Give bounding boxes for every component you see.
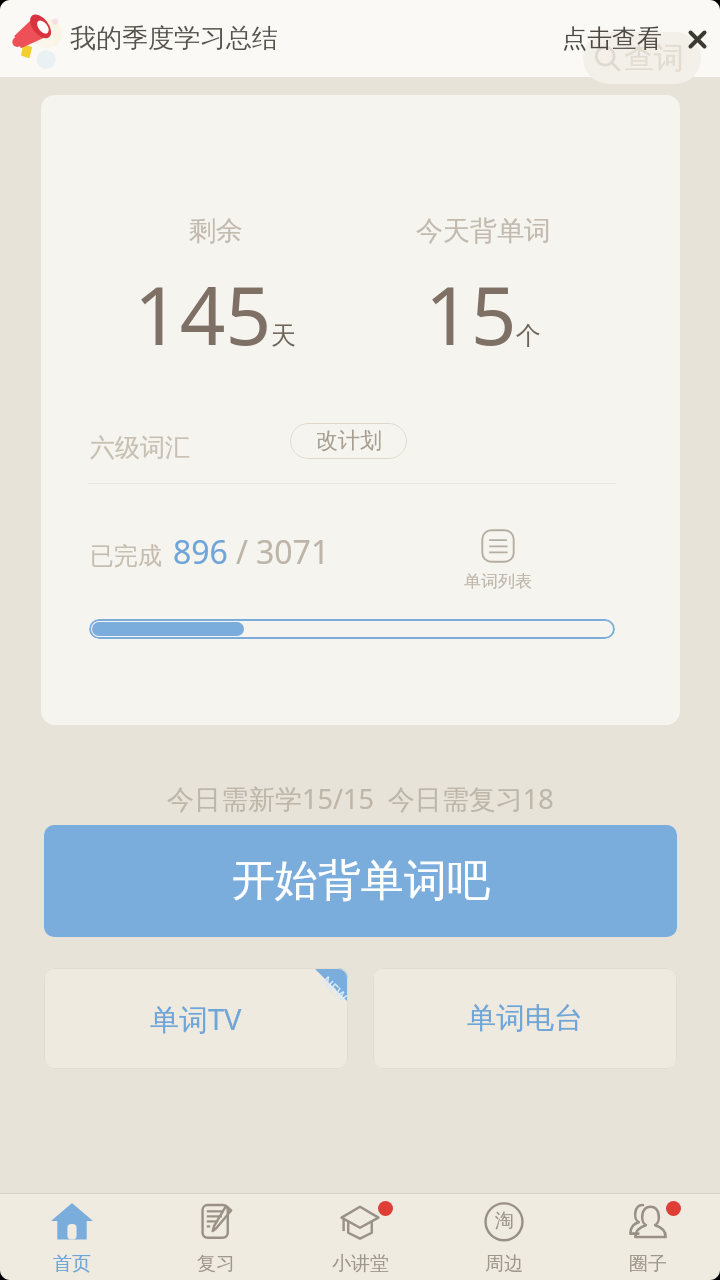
staticText: 3071 [256, 530, 330, 574]
staticText: 896 [173, 530, 228, 574]
button[interactable]: 开始背单词吧 [44, 825, 677, 937]
staticText: 六级词汇 [90, 432, 190, 463]
button[interactable]: 改计划 [290, 423, 407, 459]
staticText: 周边 [485, 1252, 523, 1276]
button[interactable]: 单词电台 [373, 968, 677, 1069]
staticText: 改计划 [316, 427, 382, 455]
staticText: 查词 [624, 39, 684, 77]
staticText: / [236, 530, 248, 574]
button[interactable]: 单词列表 [463, 529, 533, 592]
staticText: 已完成 [90, 541, 162, 571]
staticText: 小讲堂 [332, 1252, 389, 1276]
staticText: 首页 [53, 1252, 91, 1276]
button[interactable]: 复习 [144, 1194, 288, 1280]
staticText: 单词电台 [467, 1000, 583, 1037]
button[interactable]: Search word [0, 0, 720, 77]
staticText: 单词列表 [464, 571, 532, 592]
button[interactable]: 点击查看 [558, 19, 666, 58]
staticText: 天 [271, 320, 296, 351]
staticText: 今天背单词 [416, 214, 551, 248]
button[interactable]: Close [682, 24, 712, 54]
staticText: 145 [134, 259, 272, 368]
button[interactable]: 圈子 [576, 1194, 720, 1280]
button[interactable]: 单词TV [44, 968, 348, 1069]
staticText: 复习 [197, 1252, 235, 1276]
button[interactable]: Search word [583, 32, 701, 84]
button[interactable]: 淘 [432, 1194, 576, 1280]
staticText: 圈子 [629, 1252, 667, 1276]
staticText: NEW [318, 972, 348, 1006]
button[interactable]: 首页 [0, 1194, 144, 1280]
staticText: 今日需新学15/15 今日需复习18 [167, 780, 554, 817]
button[interactable]: 小讲堂 [288, 1194, 432, 1280]
staticText: 我的季度学习总结 [70, 22, 278, 55]
staticText: 淘 [495, 1209, 514, 1233]
staticText: 剩余 [189, 214, 243, 248]
staticText: 15 [425, 259, 517, 368]
staticText: 个 [516, 320, 541, 351]
staticText: 单词TV [150, 999, 242, 1039]
staticText: 开始背单词吧 [232, 854, 490, 908]
